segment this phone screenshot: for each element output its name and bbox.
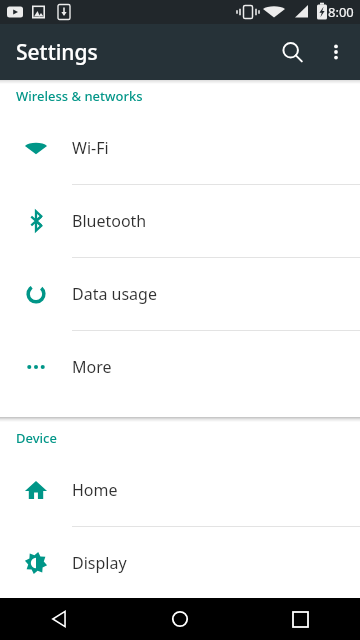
staticText: Display xyxy=(72,552,127,574)
button[interactable]: Search xyxy=(268,28,316,76)
staticText: Wireless & networks xyxy=(16,87,143,105)
staticText: Settings xyxy=(16,38,98,67)
staticText: Wi-Fi xyxy=(72,137,109,159)
button[interactable]: Display xyxy=(0,527,360,598)
button[interactable]: Home xyxy=(0,454,360,527)
staticText: More xyxy=(72,356,112,378)
staticText: Bluetooth xyxy=(72,210,147,232)
button[interactable]: Recent apps xyxy=(240,598,360,640)
staticText: 8:00 xyxy=(328,3,354,21)
staticText: Device xyxy=(16,429,57,447)
button[interactable]: More options xyxy=(312,28,360,76)
button[interactable]: Bluetooth xyxy=(0,185,360,258)
button[interactable]: More xyxy=(0,331,360,403)
button[interactable]: Data usage xyxy=(0,258,360,331)
staticText: Home xyxy=(72,479,118,501)
button[interactable]: Home xyxy=(120,598,240,640)
staticText: Data usage xyxy=(72,283,157,305)
button[interactable]: Wi-Fi xyxy=(0,112,360,185)
button[interactable]: Back xyxy=(0,598,120,640)
